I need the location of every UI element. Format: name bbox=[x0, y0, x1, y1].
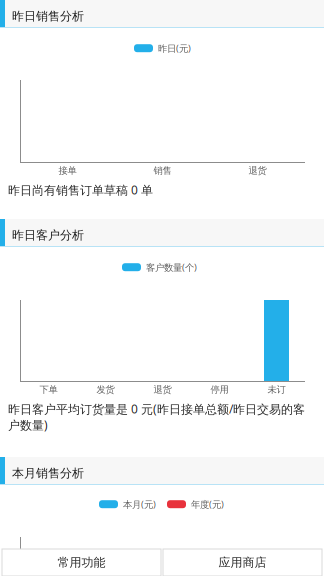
staticText: 昨日尚有销售订单草稿 0 单 bbox=[8, 182, 153, 198]
staticText: 接单 bbox=[58, 165, 76, 176]
staticText: 常用功能 bbox=[57, 555, 105, 570]
staticText: 客户数量(个) bbox=[146, 261, 197, 273]
staticText: 昨日客户平均订货量是 0 元(昨日接单总额/昨日交易的客户数量) bbox=[8, 401, 305, 433]
staticText: 年度(元) bbox=[191, 498, 224, 510]
staticText: 发货 bbox=[96, 384, 114, 395]
staticText: 未订 bbox=[267, 384, 285, 395]
staticText: 下单 bbox=[39, 384, 57, 395]
staticText: 昨日客户分析 bbox=[12, 228, 84, 243]
staticText: 昨日(元) bbox=[158, 42, 191, 54]
button[interactable]: 常用功能 bbox=[2, 549, 161, 576]
staticText: 停用 bbox=[210, 384, 228, 395]
staticText: 销售 bbox=[153, 165, 171, 176]
staticText: 昨日销售分析 bbox=[12, 9, 84, 24]
staticText: 退货 bbox=[153, 384, 171, 395]
staticText: 本月销售分析 bbox=[12, 466, 84, 481]
staticText: 应用商店 bbox=[218, 555, 266, 570]
staticText: 退货 bbox=[248, 165, 266, 176]
staticText: 本月(元) bbox=[123, 498, 156, 510]
button[interactable]: 应用商店 bbox=[163, 549, 322, 576]
